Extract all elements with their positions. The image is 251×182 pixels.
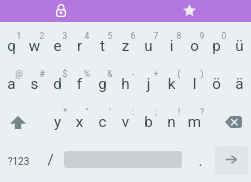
staticText: q xyxy=(0,37,23,55)
button[interactable]: 6 xyxy=(114,26,137,64)
staticText: i xyxy=(160,37,183,55)
button[interactable]: ? xyxy=(183,102,206,140)
staticText: v xyxy=(114,113,137,131)
staticText: h xyxy=(114,75,137,93)
staticText: s xyxy=(23,75,46,93)
button[interactable]: ( xyxy=(160,64,183,102)
staticText: ; xyxy=(151,107,161,117)
staticText: : xyxy=(128,107,138,117)
staticText: y xyxy=(46,113,69,131)
staticText: + xyxy=(151,69,161,79)
button[interactable]: 4 xyxy=(68,26,91,64)
button[interactable]: 9 xyxy=(183,26,206,64)
button[interactable]: ?123 xyxy=(0,140,37,178)
staticText: ?123 xyxy=(0,156,37,168)
staticText: ! xyxy=(174,107,184,117)
button[interactable]: ö xyxy=(205,64,228,102)
staticText: * xyxy=(60,107,70,117)
button[interactable]: " xyxy=(68,102,91,140)
button[interactable]: Enter xyxy=(215,146,248,175)
button[interactable]: Favorite xyxy=(126,0,251,22)
staticText: x xyxy=(68,113,91,131)
staticText: @ xyxy=(14,69,24,79)
button[interactable]: & xyxy=(91,64,114,102)
staticText: " xyxy=(82,107,92,117)
staticText: 6 xyxy=(128,31,138,41)
button[interactable]: 7 xyxy=(137,26,160,64)
button[interactable]: @ xyxy=(0,64,23,102)
staticText: 0 xyxy=(219,31,229,41)
button[interactable]: ! xyxy=(160,102,183,140)
staticText: # xyxy=(37,69,47,79)
staticText: 8 xyxy=(174,31,184,41)
staticText: m xyxy=(183,113,206,131)
button[interactable]: % xyxy=(68,64,91,102)
staticText: l xyxy=(183,75,206,93)
staticText: j xyxy=(137,75,160,93)
staticText: u xyxy=(137,37,160,55)
button[interactable]: 8 xyxy=(160,26,183,64)
staticText: / xyxy=(37,151,64,169)
staticText: g xyxy=(91,75,114,93)
staticText: p xyxy=(205,37,228,55)
button[interactable]: . xyxy=(186,140,215,178)
button[interactable]: Incognito mode xyxy=(0,0,126,22)
staticText: 5 xyxy=(105,31,115,41)
staticText: c xyxy=(91,113,114,131)
staticText: ä xyxy=(228,75,251,93)
staticText: 1 xyxy=(14,31,24,41)
button[interactable]: + xyxy=(137,64,160,102)
staticText: o xyxy=(183,37,206,55)
staticText: n xyxy=(160,113,183,131)
button[interactable]: 1 xyxy=(0,26,23,64)
staticText: e xyxy=(46,37,69,55)
staticText: a xyxy=(0,75,23,93)
button[interactable]: * xyxy=(46,102,69,140)
button[interactable]: # xyxy=(23,64,46,102)
button[interactable]: ' xyxy=(91,102,114,140)
staticText: ' xyxy=(105,107,115,117)
staticText: ü xyxy=(228,37,251,55)
staticText: 2 xyxy=(37,31,47,41)
staticText: ? xyxy=(197,107,207,117)
button[interactable]: $ xyxy=(46,64,69,102)
staticText: w xyxy=(23,37,46,55)
staticText: ö xyxy=(205,75,228,93)
staticText: f xyxy=(68,75,91,93)
staticText: 9 xyxy=(197,31,207,41)
button[interactable]: 3 xyxy=(46,26,69,64)
staticText: b xyxy=(137,113,160,131)
staticText: k xyxy=(160,75,183,93)
button[interactable]: Backspace xyxy=(205,102,251,140)
staticText: t xyxy=(91,37,114,55)
staticText: - xyxy=(128,69,138,79)
staticText: z xyxy=(114,37,137,55)
staticText: % xyxy=(82,69,92,79)
button[interactable]: ä xyxy=(228,64,251,102)
button[interactable]: / xyxy=(37,140,64,178)
button[interactable]: ) xyxy=(183,64,206,102)
staticText: 4 xyxy=(82,31,92,41)
staticText: ) xyxy=(197,69,207,79)
staticText: d xyxy=(46,75,69,93)
staticText: ( xyxy=(174,69,184,79)
button[interactable]: 2 xyxy=(23,26,46,64)
button[interactable]: - xyxy=(114,64,137,102)
button[interactable]: ; xyxy=(137,102,160,140)
staticText: . xyxy=(186,152,215,170)
staticText: r xyxy=(68,37,91,55)
button[interactable]: Shift xyxy=(0,102,46,140)
staticText: & xyxy=(105,69,115,79)
button[interactable]: : xyxy=(114,102,137,140)
button[interactable]: ü xyxy=(228,26,251,64)
staticText: 7 xyxy=(151,31,161,41)
staticText: $ xyxy=(60,69,70,79)
button[interactable]: 5 xyxy=(91,26,114,64)
button[interactable]: 0 xyxy=(205,26,228,64)
staticText: 3 xyxy=(60,31,70,41)
